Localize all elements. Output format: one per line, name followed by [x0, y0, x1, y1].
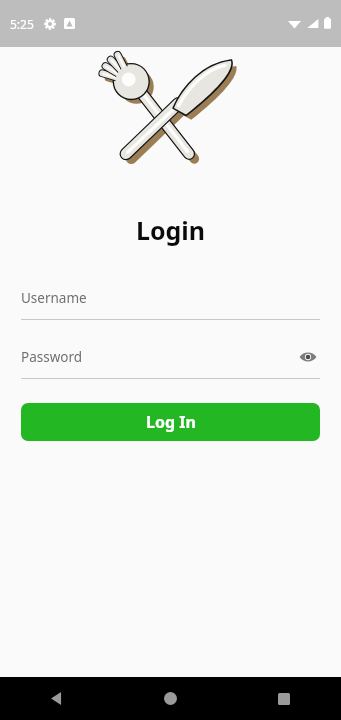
- staticText: Login: [0, 213, 341, 247]
- button[interactable]: Back: [0, 677, 113, 720]
- button[interactable]: Password: [21, 344, 320, 370]
- button[interactable]: Show password: [296, 345, 320, 369]
- staticText: Username: [21, 289, 87, 307]
- staticText: Log In: [146, 411, 196, 433]
- button[interactable]: Username: [21, 285, 320, 311]
- staticText: Password: [21, 348, 83, 366]
- button[interactable]: Home: [113, 677, 227, 720]
- staticText: 5:25: [10, 16, 34, 32]
- button[interactable]: Recent apps: [227, 677, 341, 720]
- button[interactable]: Log In: [21, 403, 320, 441]
